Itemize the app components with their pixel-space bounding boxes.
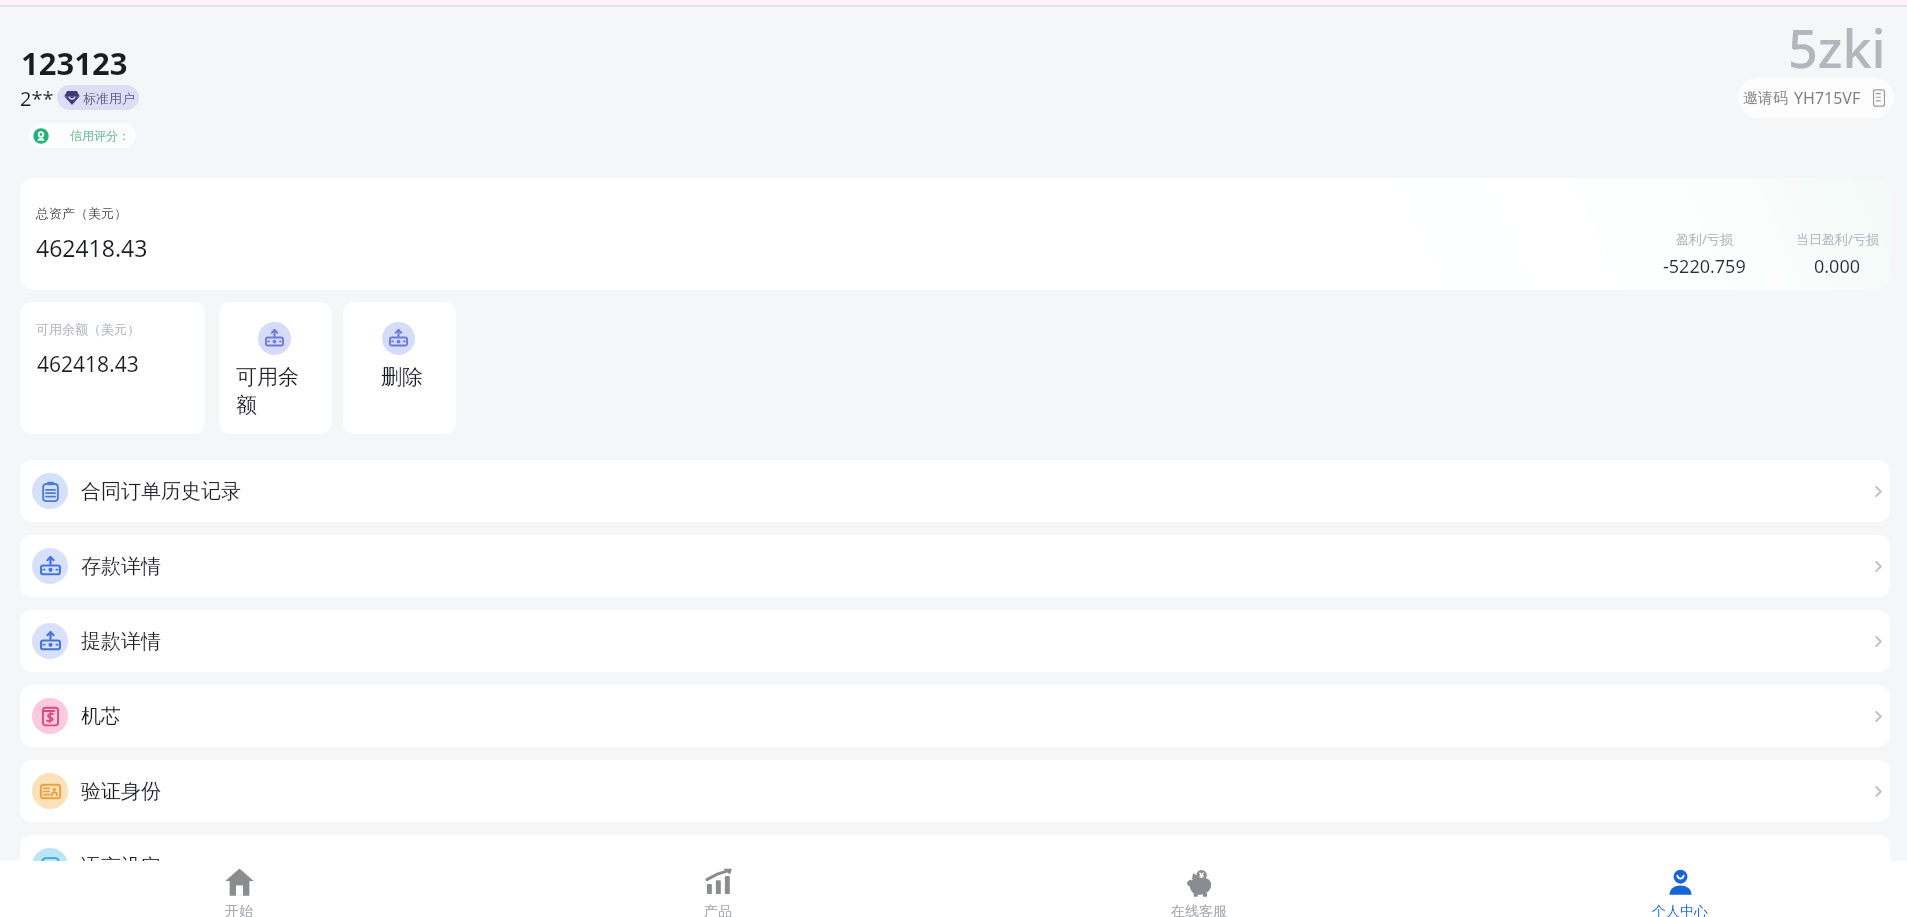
staticText: 462418.43 (37, 350, 139, 379)
staticText: 总资产（美元） (36, 205, 127, 221)
staticText: 5zki (1788, 12, 1886, 83)
staticText: YH715VF (1794, 87, 1861, 109)
button[interactable]: 邀请码 (1738, 78, 1894, 118)
button[interactable]: 可用余 额 (219, 302, 332, 434)
staticText: 123123 (21, 42, 128, 84)
staticText: 产品 (704, 903, 732, 917)
button[interactable]: 验证身份 (20, 760, 1890, 822)
staticText: 在线客服 (1171, 903, 1227, 917)
staticText: 邀请码 (1743, 89, 1788, 108)
button[interactable]: 提款详情 (20, 610, 1890, 672)
button[interactable]: 删除 (343, 302, 456, 434)
staticText: 验证身份 (81, 779, 161, 804)
button[interactable]: 标准用户 (57, 85, 139, 110)
staticText: 删除 (381, 364, 423, 390)
button[interactable]: 语言设定 (20, 835, 1890, 897)
button[interactable]: 可用余额（美元） (20, 302, 205, 434)
staticText: 个人中心 (1652, 903, 1708, 917)
staticText: 开始 (225, 903, 253, 917)
button[interactable]: 开始 (169, 861, 309, 917)
other: Copy invite code (1871, 89, 1887, 107)
button[interactable]: 合同订单历史记录 (20, 460, 1890, 522)
staticText: 0.000 (1814, 254, 1861, 279)
staticText: 提款详情 (81, 629, 161, 654)
staticText: 2** (20, 85, 54, 112)
button[interactable]: 总资产（美元） (20, 178, 1890, 290)
button[interactable]: 存款详情 (20, 535, 1890, 597)
staticText: 可用余 额 (236, 364, 299, 418)
button[interactable]: 在线客服 (1129, 861, 1269, 917)
staticText: 462418.43 (36, 232, 148, 263)
button[interactable]: 产品 (648, 861, 788, 917)
staticText: 盈利/亏损 (1676, 230, 1733, 248)
staticText: 合同订单历史记录 (81, 479, 241, 504)
staticText: 语言设定 (81, 854, 161, 879)
button[interactable]: 个人中心 (1610, 861, 1750, 917)
staticText: 机芯 (81, 704, 121, 729)
staticText: 存款详情 (81, 554, 161, 579)
button[interactable]: 机芯 (20, 685, 1890, 747)
staticText: 标准用户 (83, 90, 135, 106)
staticText: 当日盈利/亏损 (1796, 230, 1879, 248)
staticText: 可用余额（美元） (36, 321, 140, 337)
staticText: 信用评分： (70, 128, 130, 143)
staticText: -5220.759 (1663, 254, 1746, 279)
button[interactable]: 信用评分： (29, 123, 136, 148)
